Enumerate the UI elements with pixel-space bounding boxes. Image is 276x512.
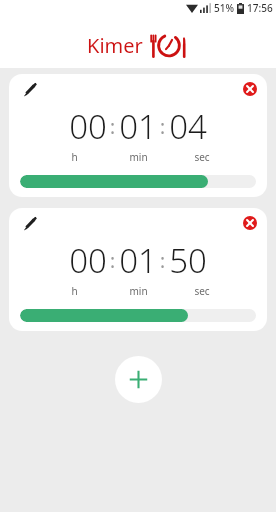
staticText: : bbox=[110, 114, 116, 140]
staticText: h bbox=[71, 150, 78, 164]
staticText: : bbox=[160, 248, 166, 274]
button[interactable]: Edit timer bbox=[9, 208, 267, 331]
button[interactable]: Edit timer bbox=[9, 74, 267, 197]
staticText: : bbox=[160, 114, 166, 140]
staticText: : bbox=[110, 248, 116, 274]
staticText: 00 bbox=[69, 238, 107, 283]
button[interactable]: Delete timer bbox=[241, 80, 259, 98]
button[interactable]: Add timer bbox=[115, 356, 162, 403]
staticText: 51% bbox=[214, 1, 234, 15]
staticText: 50 bbox=[169, 238, 207, 283]
staticText: min bbox=[129, 284, 148, 298]
staticText: 01 bbox=[119, 104, 157, 149]
button[interactable]: Edit timer bbox=[19, 80, 39, 100]
button[interactable]: Delete timer bbox=[241, 214, 259, 232]
staticText: h bbox=[71, 284, 78, 298]
staticText: 17:56 bbox=[247, 1, 273, 15]
staticText: 00 bbox=[69, 104, 107, 149]
staticText: Kimer bbox=[87, 32, 143, 59]
staticText: min bbox=[129, 150, 148, 164]
staticText: 04 bbox=[169, 104, 207, 149]
staticText: sec bbox=[194, 284, 210, 298]
staticText: sec bbox=[194, 150, 210, 164]
staticText: 01 bbox=[119, 238, 157, 283]
button[interactable]: Edit timer bbox=[19, 214, 39, 234]
